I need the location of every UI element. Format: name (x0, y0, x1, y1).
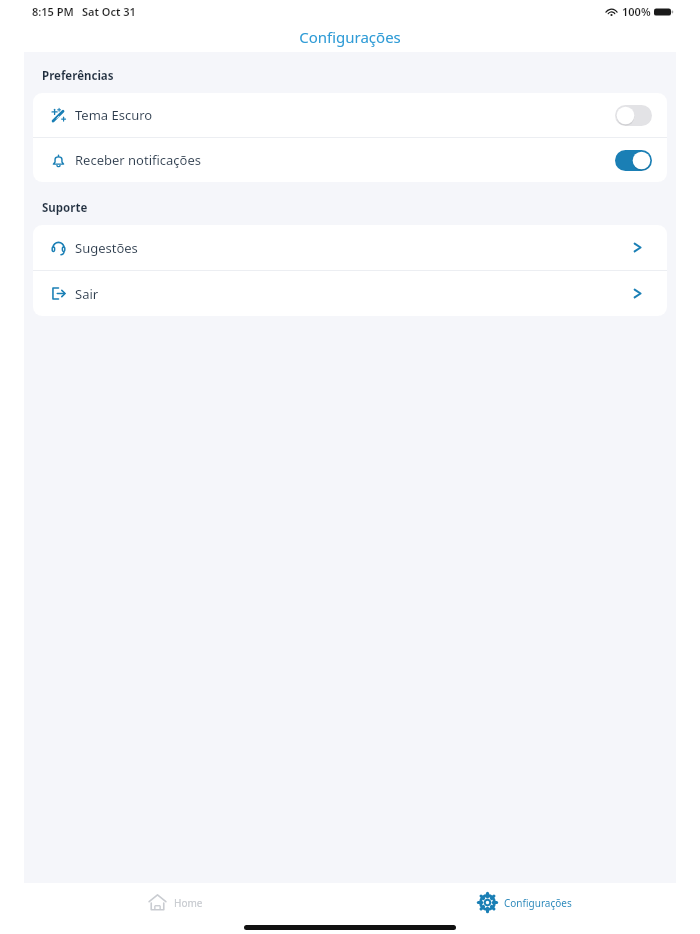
button[interactable]: Desativado (615, 105, 652, 126)
staticText: Preferências (42, 68, 114, 84)
button[interactable]: Ativado (615, 150, 652, 171)
staticText: Suporte (42, 200, 88, 216)
staticText: Sat Oct 31 (82, 4, 136, 19)
staticText: 100% (622, 4, 651, 19)
staticText: Configurações (504, 896, 572, 910)
staticText: 8:15 PM (32, 4, 74, 19)
button[interactable]: Sair (33, 271, 667, 316)
button[interactable]: Configurações (350, 883, 700, 921)
staticText: Receber notificações (75, 151, 202, 169)
button[interactable]: Home (0, 883, 350, 921)
button[interactable]: Receber notificações (33, 138, 667, 182)
button[interactable]: Sugestões (33, 225, 667, 270)
staticText: Home (174, 896, 203, 910)
button[interactable]: Tema Escuro (33, 93, 667, 137)
staticText: Sair (75, 285, 99, 303)
staticText: Tema Escuro (75, 106, 153, 124)
staticText: Configurações (299, 27, 401, 47)
staticText: Sugestões (75, 239, 138, 257)
